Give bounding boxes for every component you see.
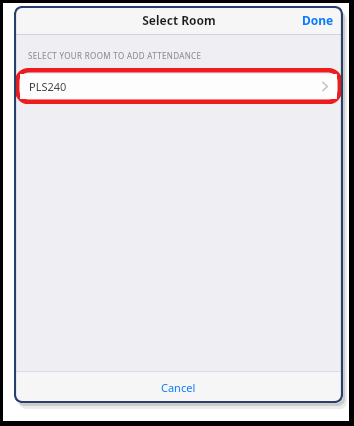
button[interactable]: PLS240 bbox=[20, 74, 337, 99]
button[interactable]: Done bbox=[293, 7, 343, 33]
staticText: PLS240 bbox=[29, 79, 67, 94]
other: Open PLS240 bbox=[322, 81, 328, 92]
staticText: Cancel bbox=[161, 380, 196, 395]
staticText: SELECT YOUR ROOM TO ADD ATTENDANCE bbox=[28, 50, 202, 61]
staticText: Select Room bbox=[142, 12, 216, 28]
button[interactable]: Cancel bbox=[14, 372, 343, 403]
staticText: Done bbox=[302, 12, 334, 28]
